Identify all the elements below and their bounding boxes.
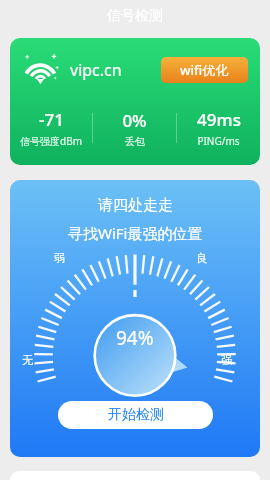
staticText: 丢包 — [125, 135, 145, 148]
staticText: -71 — [39, 108, 64, 131]
staticText: 强 — [221, 353, 232, 367]
staticText: 信号强度dBm — [20, 134, 82, 148]
staticText: 寻找WiFi最强的位置 — [68, 223, 203, 243]
staticText: 0% — [122, 109, 147, 132]
staticText: 信号检测 — [107, 7, 163, 25]
staticText: 请四处走走 — [98, 196, 173, 215]
staticText: 49ms — [197, 108, 241, 131]
staticText: 94% — [116, 325, 154, 351]
staticText: 无 — [22, 353, 33, 367]
button[interactable]: wifi优化 — [161, 57, 248, 83]
staticText: 良 — [196, 251, 207, 265]
staticText: vipc.cn — [70, 59, 122, 81]
other: WiFi signal — [22, 50, 62, 90]
staticText: wifi优化 — [180, 61, 229, 79]
staticText: PING/ms — [197, 134, 240, 148]
staticText: 弱 — [54, 251, 65, 265]
staticText: 开始检测 — [108, 406, 164, 424]
button[interactable]: 开始检测 — [58, 401, 213, 429]
